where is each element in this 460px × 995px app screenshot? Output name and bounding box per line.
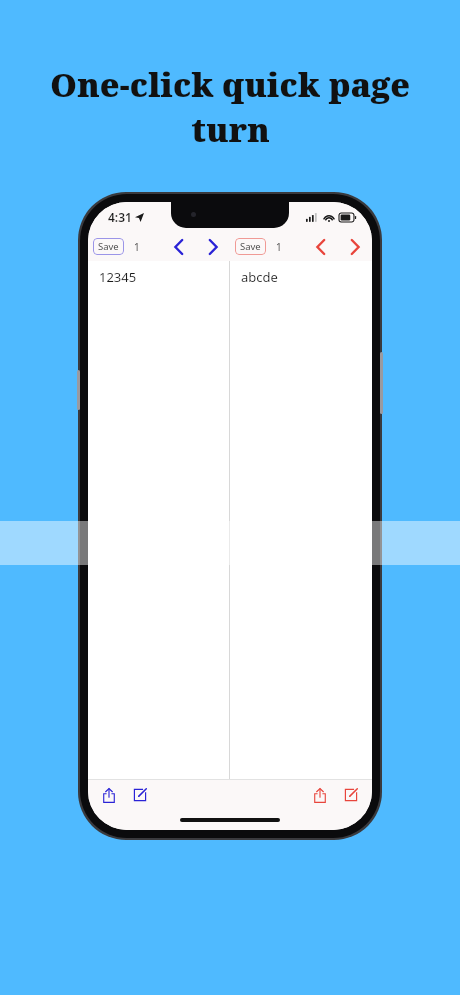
button[interactable]: Next page <box>345 237 365 257</box>
staticText: turn <box>191 107 270 152</box>
button[interactable]: Save <box>93 238 124 255</box>
button[interactable]: Save <box>235 238 266 255</box>
button[interactable]: Next page <box>203 237 223 257</box>
button[interactable]: Compose <box>342 786 360 804</box>
staticText: abcde <box>241 268 278 286</box>
staticText: 12345 <box>99 268 137 286</box>
staticText: 1 <box>134 240 140 254</box>
staticText: Save <box>98 240 119 253</box>
staticText: 4:31 <box>108 209 132 225</box>
button[interactable]: Share <box>311 786 329 804</box>
button[interactable]: Compose <box>131 786 149 804</box>
button[interactable]: Previous page <box>169 237 189 257</box>
button[interactable]: Previous page <box>311 237 331 257</box>
staticText: Save <box>240 240 261 253</box>
staticText: 1 <box>276 240 282 254</box>
button[interactable]: Share <box>100 786 118 804</box>
staticText: One-click quick page <box>50 62 410 107</box>
